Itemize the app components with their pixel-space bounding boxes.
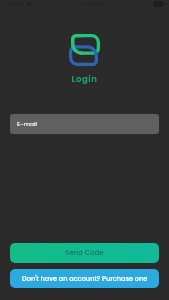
staticText: Send Code: [65, 248, 104, 258]
button[interactable]: Send Code: [10, 243, 159, 263]
staticText: E-mail: [17, 120, 38, 128]
staticText: Don't have an account? Purchase one: [22, 274, 148, 283]
button[interactable]: E-mail: [10, 114, 159, 134]
staticText: Login: [0, 73, 169, 85]
button[interactable]: Don't have an account? Purchase one: [10, 269, 159, 288]
